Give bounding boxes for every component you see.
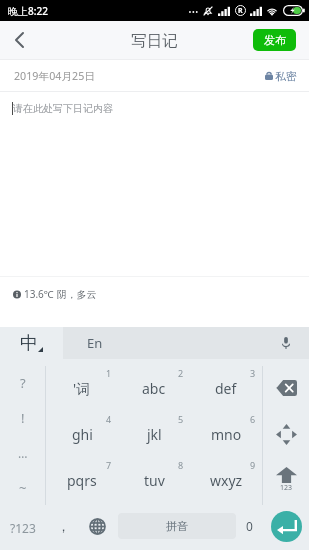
staticText: 4: [106, 413, 112, 425]
button[interactable]: Enter: [263, 503, 309, 549]
button[interactable]: Backspace: [263, 365, 309, 411]
staticText: jkl: [147, 425, 162, 444]
staticText: ~: [19, 479, 27, 497]
button[interactable]: '词: [46, 365, 118, 411]
button[interactable]: jkl: [118, 411, 190, 457]
button[interactable]: Shift 123: [263, 457, 309, 503]
staticText: 晚上8:22: [8, 4, 48, 18]
button[interactable]: abc: [118, 365, 190, 411]
staticText: 7: [106, 459, 112, 471]
button[interactable]: Back: [0, 21, 39, 59]
button[interactable]: ，: [46, 503, 76, 549]
staticText: mno: [211, 425, 242, 444]
staticText: 请在此处写下日记内容: [13, 102, 113, 115]
staticText: 1: [106, 367, 112, 379]
button[interactable]: Arrow keys: [263, 411, 309, 457]
staticText: 发布: [264, 33, 286, 47]
staticText: ，: [57, 518, 70, 534]
button[interactable]: ?123: [0, 505, 45, 550]
staticText: 2019年04月25日: [14, 69, 95, 84]
button[interactable]: mno: [190, 411, 262, 457]
staticText: ?123: [10, 520, 36, 536]
staticText: abc: [142, 379, 166, 398]
staticText: En: [87, 334, 103, 352]
staticText: 6: [250, 413, 256, 425]
staticText: ?: [20, 374, 26, 392]
button[interactable]: pqrs: [46, 457, 118, 503]
staticText: R: [238, 6, 243, 16]
button[interactable]: !: [0, 400, 45, 435]
staticText: '词: [73, 379, 91, 398]
staticText: pqrs: [67, 471, 97, 490]
button[interactable]: 拼音: [118, 513, 236, 539]
staticText: 私密: [275, 70, 297, 83]
button[interactable]: 0: [236, 503, 262, 549]
staticText: ghi: [72, 425, 93, 444]
button[interactable]: 私密: [265, 69, 297, 82]
button[interactable]: 发布: [253, 29, 296, 51]
staticText: 123: [280, 483, 293, 493]
button[interactable]: ?: [0, 365, 45, 400]
button[interactable]: wxyz: [190, 457, 262, 503]
staticText: 写日记: [131, 31, 178, 51]
staticText: 8: [178, 459, 184, 471]
staticText: wxyz: [210, 471, 243, 490]
button[interactable]: Voice input: [278, 335, 294, 351]
staticText: 5: [178, 413, 184, 425]
button[interactable]: …: [0, 435, 45, 470]
staticText: 9: [250, 459, 256, 471]
button[interactable]: ghi: [46, 411, 118, 457]
staticText: tuv: [144, 471, 165, 490]
button[interactable]: tuv: [118, 457, 190, 503]
button[interactable]: 中: [0, 327, 63, 359]
staticText: 中: [20, 332, 38, 355]
button[interactable]: En: [63, 327, 309, 359]
staticText: 3: [250, 367, 256, 379]
staticText: 拼音: [166, 519, 188, 533]
button[interactable]: Language: [76, 503, 118, 549]
button[interactable]: ~: [0, 470, 45, 505]
button[interactable]: 13.6℃ 阴，多云: [13, 287, 97, 301]
staticText: …: [18, 445, 28, 461]
staticText: 0: [246, 518, 253, 534]
button[interactable]: def: [190, 365, 262, 411]
staticText: 13.6℃ 阴，多云: [24, 287, 97, 301]
staticText: def: [215, 379, 237, 398]
staticText: 2: [178, 367, 184, 379]
staticText: !: [21, 409, 25, 427]
